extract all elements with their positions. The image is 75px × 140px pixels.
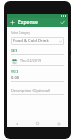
button[interactable]: Home — [35, 121, 40, 126]
staticText: DATE — [11, 49, 18, 53]
staticText: Expense — [18, 19, 38, 26]
staticText: PRICE — [11, 70, 19, 74]
button[interactable]: Description (Optional) — [11, 88, 64, 95]
button[interactable]: Pick date — [11, 57, 64, 64]
button[interactable]: Add — [9, 19, 16, 26]
button[interactable]: Save — [59, 19, 66, 26]
button[interactable]: Back — [14, 121, 19, 126]
staticText: Select Category — [11, 31, 30, 35]
button[interactable]: Food & Cold Drink — [11, 37, 64, 45]
staticText: Food & Cold Drink — [13, 38, 49, 44]
staticText: 0.00 — [11, 75, 19, 80]
button[interactable]: Recent apps — [56, 121, 61, 126]
staticText: Description (Optional) — [11, 88, 51, 93]
other: Pick date — [11, 58, 17, 64]
staticText: Thu 02/2019 — [20, 58, 42, 63]
